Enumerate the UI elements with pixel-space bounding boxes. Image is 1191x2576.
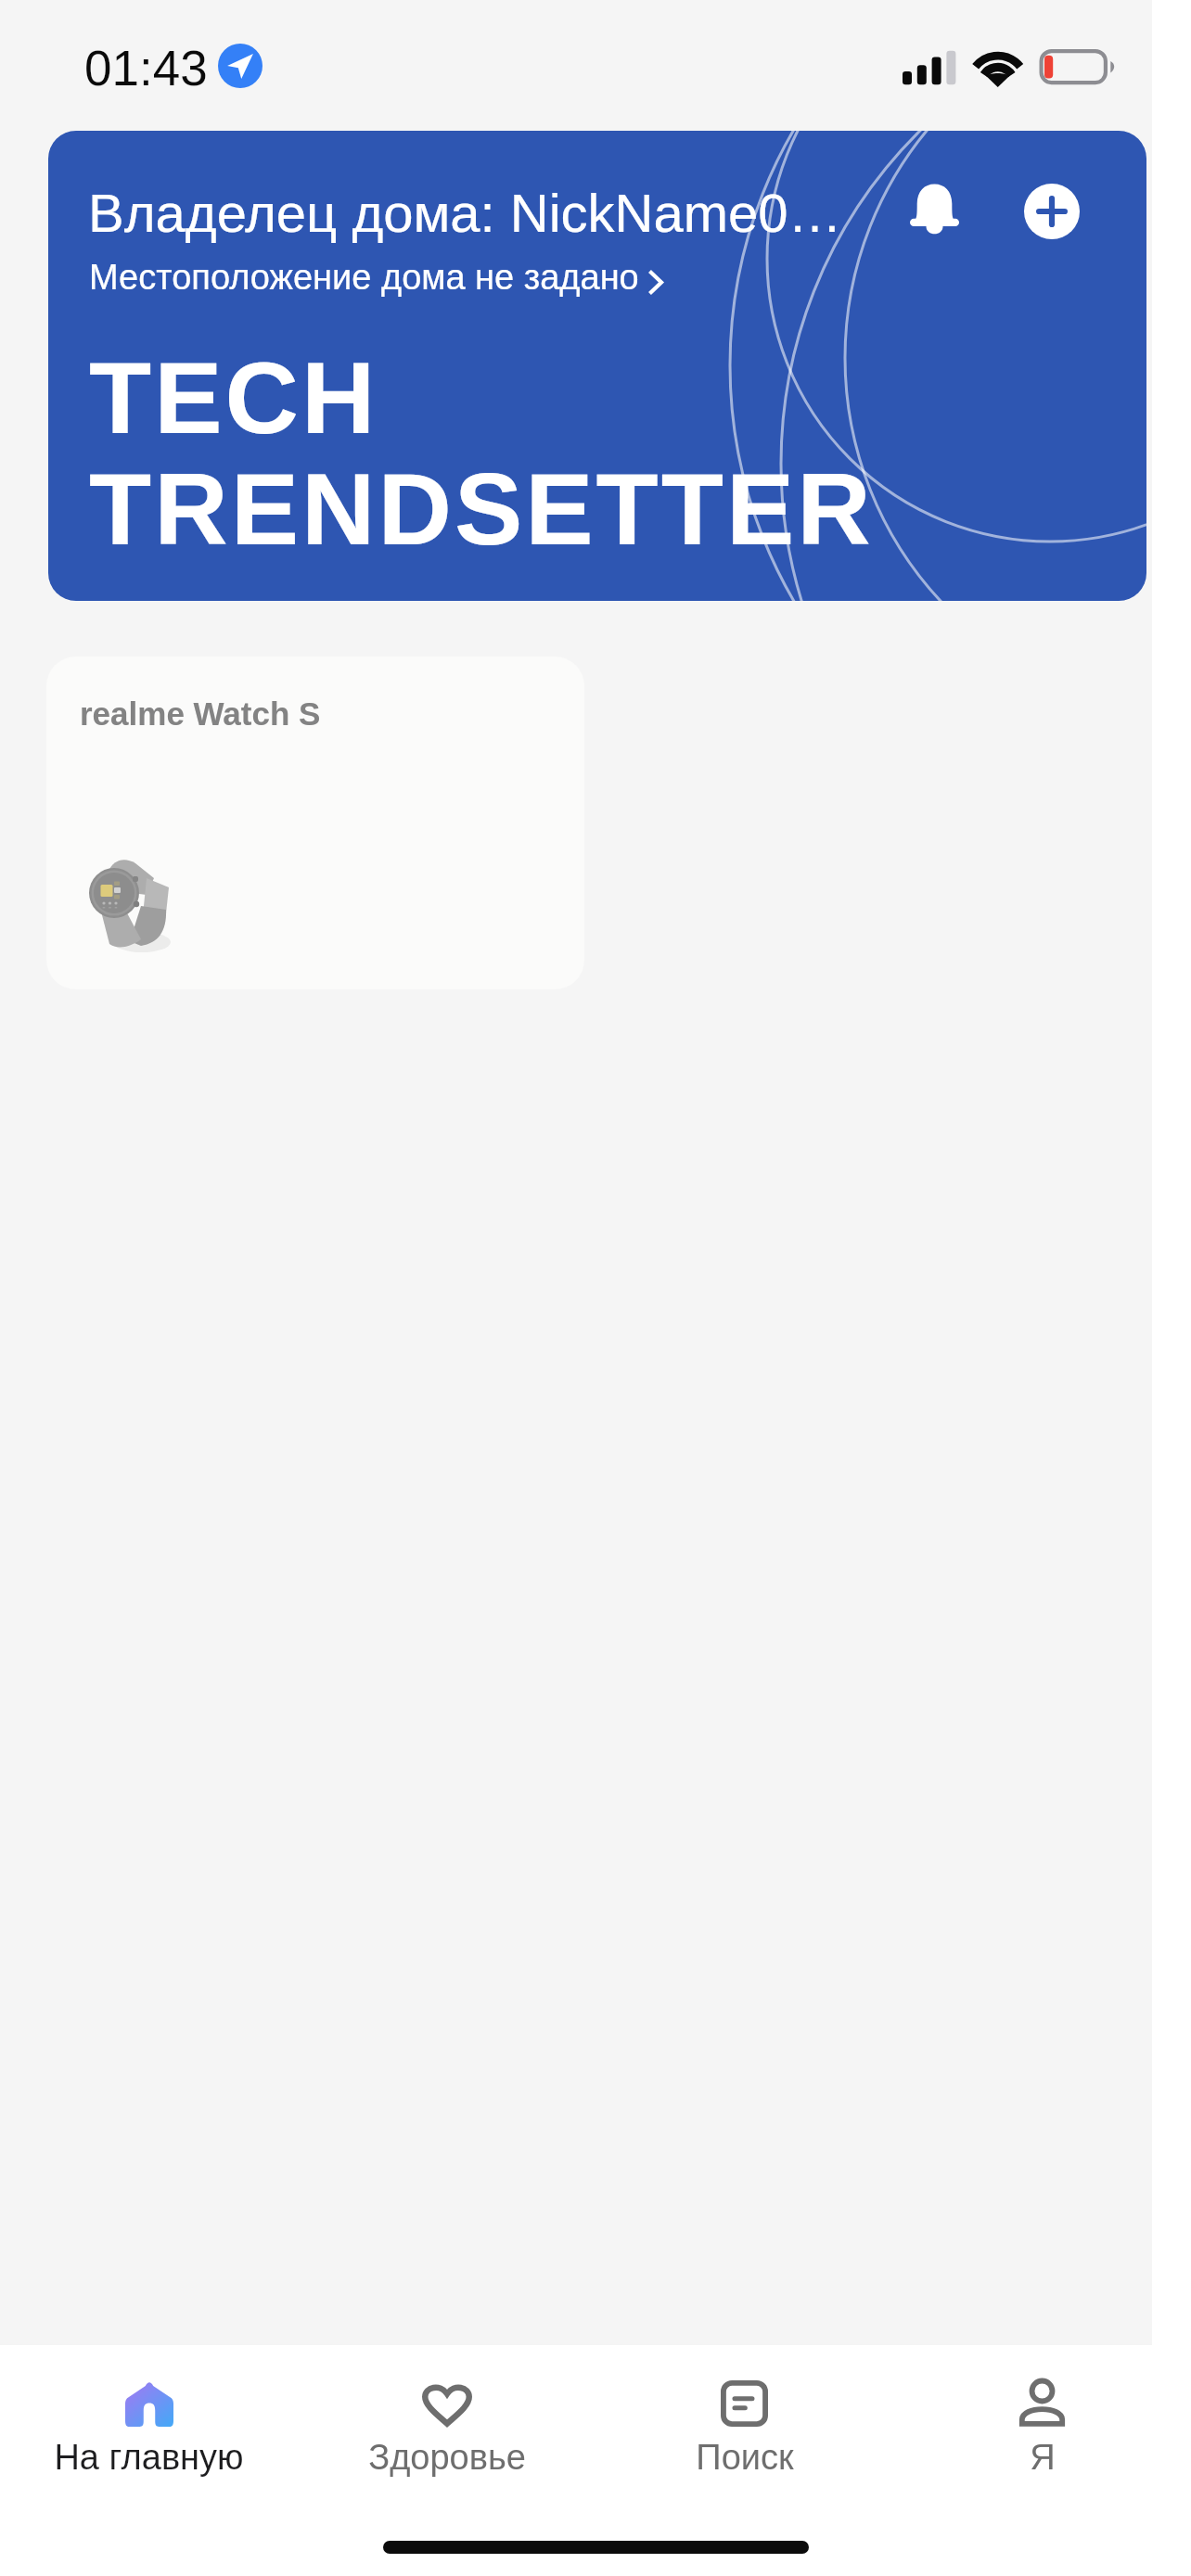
button[interactable]: На главную xyxy=(0,2356,298,2477)
staticText: realme Watch S xyxy=(80,695,321,732)
button[interactable]: Владелец дома: NickName0… xyxy=(48,131,1146,601)
staticText: Здоровье xyxy=(368,2438,526,2477)
button[interactable]: realme Watch S xyxy=(46,657,584,989)
button[interactable]: Add device xyxy=(1024,184,1080,239)
staticText: Я xyxy=(1030,2438,1056,2477)
staticText: Местоположение дома не задано xyxy=(89,258,639,297)
button[interactable]: Здоровье xyxy=(298,2356,595,2477)
staticText: Поиск xyxy=(696,2438,794,2477)
staticText: 01:43 xyxy=(84,41,208,96)
button[interactable]: Я xyxy=(893,2356,1191,2477)
button[interactable]: Местоположение дома не задано xyxy=(89,258,658,297)
button[interactable]: Notifications xyxy=(891,166,978,252)
staticText: На главную xyxy=(54,2438,244,2477)
staticText: TECH xyxy=(89,340,378,454)
staticText: Владелец дома: NickName0… xyxy=(88,183,842,243)
staticText: TRENDSETTER xyxy=(89,452,874,566)
button[interactable]: Поиск xyxy=(595,2356,893,2477)
